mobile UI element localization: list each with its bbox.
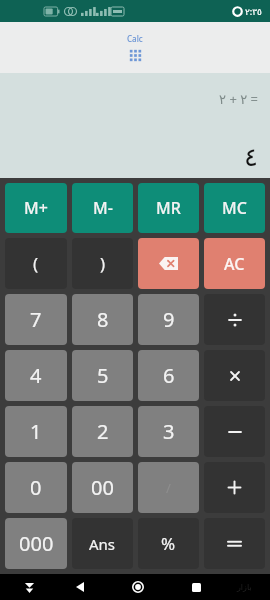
staticText: 7 — [30, 306, 42, 333]
staticText: 0 — [30, 474, 42, 501]
staticText: 000 — [19, 530, 54, 557]
button[interactable]: % — [138, 518, 199, 569]
button[interactable]: / — [138, 462, 199, 513]
button[interactable]: Ans — [72, 518, 133, 569]
staticText: / — [166, 479, 171, 497]
staticText: 9 — [163, 306, 175, 333]
button[interactable]: 5 — [72, 350, 133, 401]
staticText: 6 — [163, 362, 175, 389]
button[interactable]: Hide keyboard — [18, 576, 40, 598]
staticText: M- — [93, 197, 113, 219]
button[interactable]: 9 — [138, 294, 199, 345]
button[interactable]: 0 — [5, 462, 67, 513]
staticText: ٢:٣٥ — [245, 5, 262, 17]
button[interactable]: Calc app grid — [127, 47, 143, 63]
staticText: Calc — [127, 33, 143, 44]
button[interactable]: 8 — [72, 294, 133, 345]
button[interactable]: 6 — [138, 350, 199, 401]
staticText: 4 — [30, 362, 42, 389]
button[interactable]: AC — [204, 238, 265, 289]
button[interactable]: MR — [138, 183, 199, 233]
staticText: 5 — [97, 362, 109, 389]
staticText: 1 — [30, 418, 42, 445]
staticText: M+ — [24, 197, 48, 219]
button[interactable]: Minus — [204, 406, 265, 457]
staticText: AC — [224, 253, 245, 275]
button[interactable]: Divide — [204, 294, 265, 345]
staticText: بازار — [237, 583, 252, 592]
button[interactable]: MC — [204, 183, 265, 233]
button[interactable]: M- — [72, 183, 133, 233]
button[interactable]: Plus — [204, 462, 265, 513]
button[interactable]: Equals — [204, 518, 265, 569]
button[interactable]: Recent apps — [185, 576, 207, 598]
button[interactable]: ) — [72, 238, 133, 289]
staticText: 2 — [97, 418, 109, 445]
button[interactable]: 7 — [5, 294, 67, 345]
button[interactable]: Home — [127, 576, 149, 598]
staticText: ( — [33, 252, 39, 275]
button[interactable]: Back — [69, 576, 91, 598]
staticText: MC — [222, 197, 247, 219]
staticText: ) — [100, 252, 106, 275]
staticText: 00 — [91, 474, 114, 501]
button[interactable]: 000 — [5, 518, 67, 569]
button[interactable]: 4 — [5, 350, 67, 401]
button[interactable]: ( — [5, 238, 67, 289]
staticText: Ans — [89, 534, 116, 554]
button[interactable]: M+ — [5, 183, 67, 233]
button[interactable]: 00 — [72, 462, 133, 513]
button[interactable]: Backspace — [138, 238, 199, 289]
button[interactable]: Multiply — [204, 350, 265, 401]
staticText: 3 — [163, 418, 175, 445]
button[interactable]: 3 — [138, 406, 199, 457]
staticText: 8 — [97, 306, 109, 333]
staticText: ٢ + ٢ = — [219, 90, 258, 108]
staticText: MR — [156, 197, 181, 219]
button[interactable]: 2 — [72, 406, 133, 457]
staticText: ٤ — [244, 142, 258, 172]
button[interactable]: 1 — [5, 406, 67, 457]
staticText: % — [161, 532, 176, 555]
